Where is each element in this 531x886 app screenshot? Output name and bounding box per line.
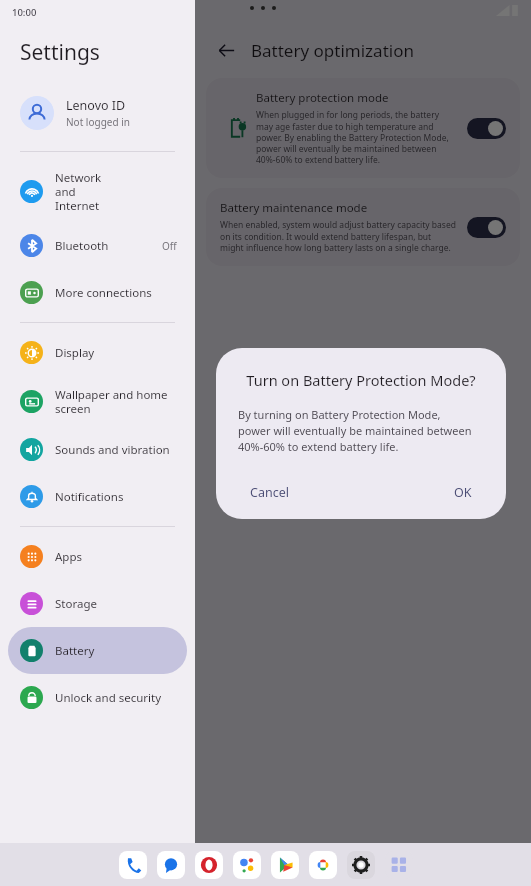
button[interactable]: All apps [385, 851, 413, 879]
button[interactable]: Network and Internet [8, 160, 187, 222]
staticText: Not logged in [66, 115, 130, 129]
button[interactable]: OK [442, 478, 484, 507]
staticText: Lenovo ID [66, 97, 126, 114]
button[interactable]: Assistant [233, 851, 261, 879]
button[interactable]: Battery [8, 627, 187, 674]
staticText: When enabled, system would adjust batter… [220, 219, 457, 254]
button[interactable]: Settings [347, 851, 375, 879]
button[interactable]: Play Store [271, 851, 299, 879]
button[interactable]: Lenovo ID [0, 87, 195, 139]
staticText: More connections [55, 285, 177, 301]
staticText: Cancel [250, 484, 289, 501]
staticText: Display [55, 345, 177, 361]
staticText: Battery maintenance mode [220, 200, 368, 216]
staticText: Settings [20, 38, 100, 67]
staticText: When plugged in for long periods, the ba… [256, 109, 457, 166]
button[interactable]: Apps [8, 533, 187, 580]
button[interactable]: Notifications [8, 473, 187, 520]
button[interactable]: Cancel [238, 478, 301, 507]
staticText: Battery optimization [251, 39, 414, 62]
button[interactable]: More connections [8, 269, 187, 316]
staticText: Sounds and vibration [55, 442, 177, 458]
staticText: Bluetooth [55, 238, 162, 254]
button[interactable]: Photos [309, 851, 337, 879]
button[interactable]: Toggle Battery protection mode [467, 118, 506, 139]
staticText: By turning on Battery Protection Mode, p… [238, 407, 472, 454]
staticText: Notifications [55, 489, 177, 505]
button[interactable]: Storage [8, 580, 187, 627]
button[interactable]: Unlock and security [8, 674, 187, 721]
button[interactable]: Phone [119, 851, 147, 879]
staticText: Battery protection mode [256, 90, 389, 106]
staticText: Apps [55, 549, 177, 565]
button[interactable]: Back [209, 33, 243, 67]
staticText: Off [162, 239, 177, 253]
button[interactable]: Display [8, 329, 187, 376]
staticText: Wallpaper and home screen [55, 387, 177, 416]
button[interactable]: Battery protection mode [206, 78, 520, 178]
button[interactable]: Opera [195, 851, 223, 879]
staticText: Storage [55, 596, 177, 612]
staticText: Turn on Battery Protection Mode? [238, 370, 484, 390]
button[interactable]: Messages [157, 851, 185, 879]
button[interactable]: Battery maintenance mode [206, 188, 520, 266]
staticText: OK [454, 484, 472, 501]
button[interactable]: Bluetooth [8, 222, 187, 269]
staticText: Unlock and security [55, 690, 177, 706]
button[interactable]: Wallpaper and home screen [8, 376, 187, 426]
button[interactable]: Sounds and vibration [8, 426, 187, 473]
button[interactable]: Toggle Battery maintenance mode [467, 217, 506, 238]
staticText: 10:00 [12, 6, 37, 19]
staticText: Battery [55, 643, 177, 659]
staticText: Network and Internet [55, 170, 177, 213]
